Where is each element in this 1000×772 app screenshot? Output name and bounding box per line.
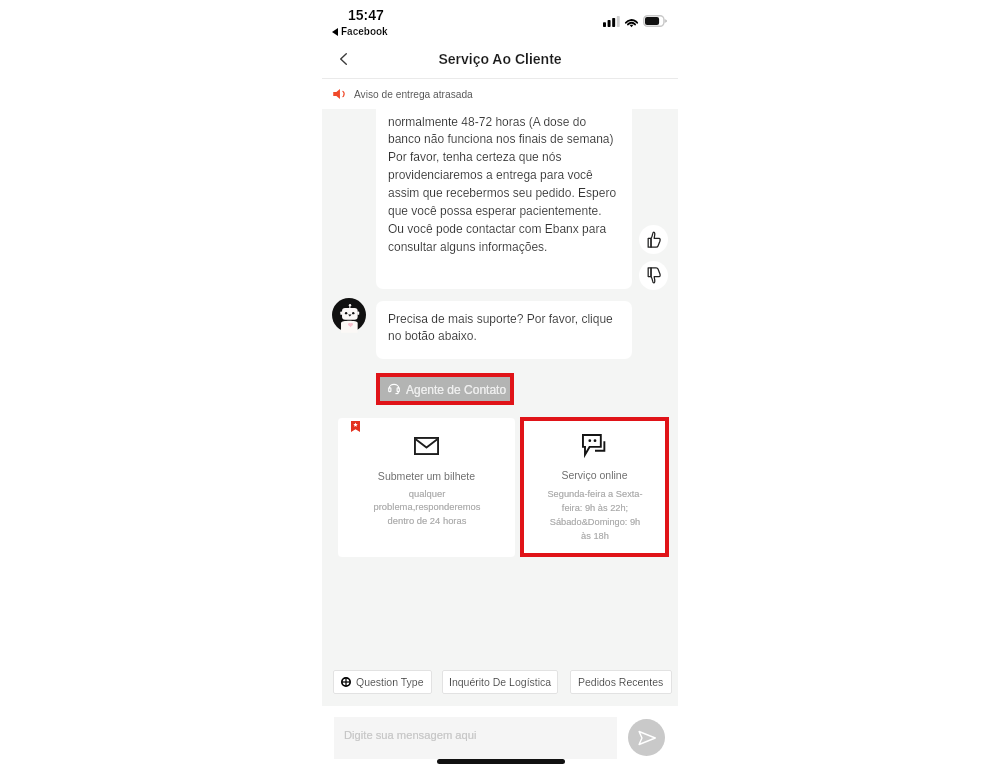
- staticText: Submeter um bilhete: [338, 470, 515, 482]
- button[interactable]: Precisa de mais suporte? Por favor, cliq…: [376, 301, 632, 359]
- staticText: Aviso de entrega atrasada: [354, 89, 473, 100]
- staticText: Question Type: [356, 676, 424, 688]
- button[interactable]: normalmente 48-72 horas (A dose do banco…: [376, 101, 632, 289]
- staticText: Digite sua mensagem aqui: [344, 729, 477, 742]
- button[interactable]: Submeter um bilhete: [338, 418, 515, 557]
- staticText: Facebook: [341, 26, 388, 37]
- button[interactable]: Digite sua mensagem aqui: [334, 717, 617, 759]
- staticText: normalmente 48-72 horas (A dose do banco…: [388, 115, 620, 254]
- staticText: Serviço online: [524, 469, 665, 481]
- staticText: 15:47: [348, 7, 384, 23]
- staticText: Inquérito De Logística: [449, 676, 552, 688]
- button[interactable]: Serviço online: [524, 421, 665, 553]
- button[interactable]: Dislike: [639, 261, 668, 290]
- staticText: Pedidos Recentes: [578, 676, 664, 688]
- button[interactable]: Back: [329, 45, 357, 73]
- button[interactable]: Send: [628, 719, 665, 756]
- staticText: qualquer problema,responderemos dentro d…: [367, 488, 487, 526]
- staticText: Agente de Contato: [406, 383, 507, 396]
- button[interactable]: Inquérito De Logística: [442, 670, 558, 694]
- staticText: Serviço Ao Cliente: [322, 51, 678, 67]
- staticText: Precisa de mais suporte? Por favor, cliq…: [388, 312, 620, 343]
- button[interactable]: Pedidos Recentes: [570, 670, 672, 694]
- button[interactable]: Agente de Contato: [380, 377, 510, 401]
- staticText: Segunda-feira a Sexta-feira: 9h às 22h; …: [544, 489, 646, 541]
- button[interactable]: Question Type: [333, 670, 432, 694]
- button[interactable]: Like: [639, 225, 668, 254]
